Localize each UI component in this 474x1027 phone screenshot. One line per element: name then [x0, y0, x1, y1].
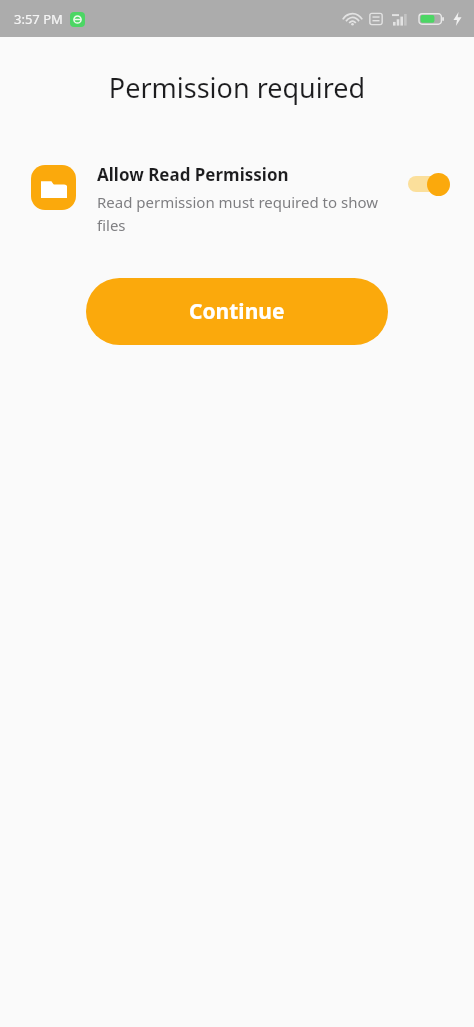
staticText: Read permission must required to show fi…: [97, 192, 396, 235]
staticText: Permission required: [0, 69, 474, 106]
staticText: Allow Read Permission: [97, 163, 289, 186]
staticText: Continue: [189, 297, 285, 326]
button[interactable]: Allow read permission toggle: [408, 171, 452, 197]
button[interactable]: Continue: [86, 278, 388, 345]
staticText: 3:57 PM: [14, 10, 63, 28]
button[interactable]: Allow Read Permission: [0, 163, 474, 235]
